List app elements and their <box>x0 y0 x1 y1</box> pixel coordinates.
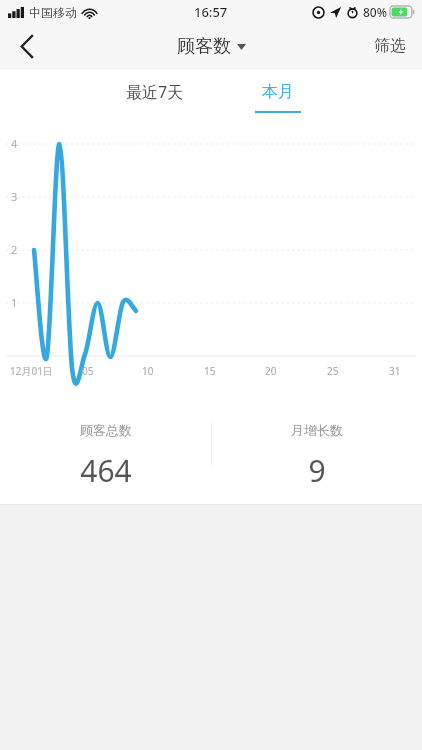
staticText: 20 <box>265 364 277 378</box>
staticText: 10 <box>142 364 154 378</box>
staticText: 最近7天 <box>126 81 184 103</box>
staticText: 15 <box>204 364 216 378</box>
staticText: 中国移动 <box>29 5 77 20</box>
button[interactable]: 顾客数 <box>177 35 246 58</box>
button[interactable]: 筛选 <box>358 24 422 68</box>
button[interactable]: 月增长数 <box>211 396 422 504</box>
staticText: 1 <box>11 295 18 310</box>
staticText: 2 <box>11 242 18 257</box>
staticText: 464 <box>80 450 132 491</box>
button[interactable]: 本月 <box>245 69 311 121</box>
staticText: 顾客数 <box>177 35 231 58</box>
staticText: 9 <box>308 450 326 491</box>
staticText: 本月 <box>262 82 294 102</box>
staticText: 05 <box>82 364 94 378</box>
staticText: 顾客总数 <box>80 422 132 438</box>
staticText: 31 <box>389 364 401 378</box>
staticText: 3 <box>11 189 18 204</box>
button[interactable]: 顾客总数 <box>0 396 211 504</box>
staticText: 筛选 <box>374 36 406 56</box>
staticText: 4 <box>11 136 18 151</box>
button[interactable]: 最近7天 <box>111 69 199 121</box>
staticText: 25 <box>327 364 339 378</box>
staticText: 月增长数 <box>291 422 343 438</box>
staticText: 80% <box>363 4 387 20</box>
button[interactable]: Back <box>0 24 54 68</box>
staticText: 12月01日 <box>10 364 53 378</box>
staticText: 16:57 <box>194 3 228 21</box>
